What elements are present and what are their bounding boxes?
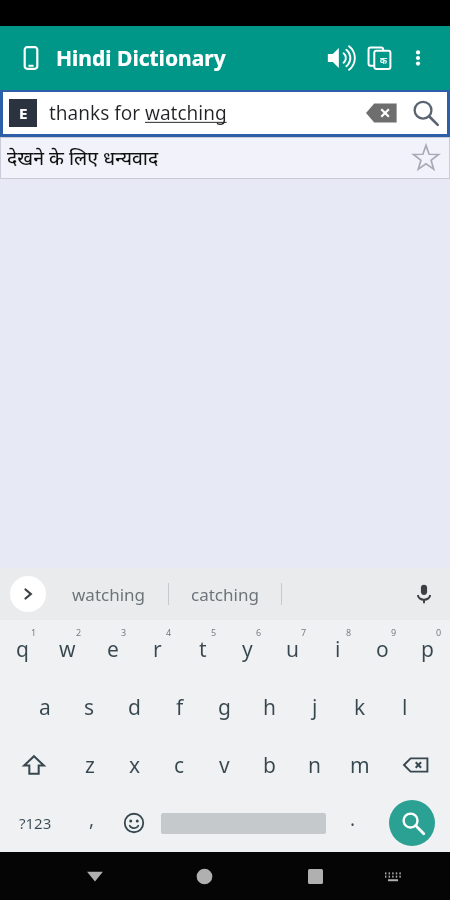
button[interactable]: Back: [65, 852, 124, 900]
button[interactable]: x: [112, 736, 157, 794]
button[interactable]: More options: [400, 40, 436, 76]
staticText: 0: [436, 626, 442, 638]
staticText: thanks for watching: [49, 100, 227, 126]
button[interactable]: a: [22, 678, 67, 736]
button[interactable]: Clear: [359, 92, 403, 134]
button[interactable]: p: [405, 620, 450, 678]
button[interactable]: Shift: [0, 736, 67, 794]
staticText: 2: [76, 626, 82, 638]
button[interactable]: watching: [68, 583, 150, 606]
button[interactable]: Recent apps: [285, 852, 345, 900]
staticText: 8: [346, 626, 352, 638]
staticText: b: [263, 751, 276, 780]
button[interactable]: o: [360, 620, 405, 678]
button[interactable]: e: [90, 620, 135, 678]
staticText: 4: [166, 626, 172, 638]
staticText: v: [219, 751, 230, 780]
button[interactable]: .: [332, 794, 374, 852]
button[interactable]: n: [292, 736, 337, 794]
button[interactable]: Voice input: [404, 574, 444, 614]
staticText: t: [199, 635, 207, 664]
staticText: क: [380, 54, 387, 66]
button[interactable]: t: [180, 620, 225, 678]
staticText: n: [308, 751, 321, 780]
staticText: l: [402, 693, 408, 722]
staticText: a: [39, 693, 51, 722]
button[interactable]: d: [112, 678, 157, 736]
button[interactable]: y: [225, 620, 270, 678]
staticText: u: [286, 635, 299, 664]
button[interactable]: ?123: [0, 794, 71, 852]
button[interactable]: Space: [155, 794, 332, 852]
staticText: 3: [121, 626, 127, 638]
button[interactable]: Speak: [320, 38, 360, 78]
button[interactable]: Home: [174, 852, 234, 900]
staticText: ?123: [19, 813, 52, 833]
button[interactable]: q: [0, 620, 45, 678]
staticText: i: [335, 635, 341, 664]
button[interactable]: E: [3, 92, 447, 134]
staticText: w: [59, 635, 76, 664]
button[interactable]: Emoji: [113, 794, 155, 852]
button[interactable]: More suggestions: [10, 576, 46, 612]
staticText: s: [84, 693, 95, 722]
button[interactable]: Favorite: [406, 138, 446, 178]
button[interactable]: ,: [71, 794, 113, 852]
staticText: z: [85, 751, 95, 780]
staticText: y: [242, 635, 253, 664]
button[interactable]: Backspace: [382, 736, 450, 794]
button[interactable]: Switch keyboard: [363, 852, 423, 900]
button[interactable]: w: [45, 620, 90, 678]
button[interactable]: h: [247, 678, 292, 736]
staticText: h: [263, 693, 276, 722]
staticText: p: [421, 635, 434, 664]
button[interactable]: z: [67, 736, 112, 794]
staticText: देखने के लिए धन्यवाद: [7, 145, 159, 171]
button[interactable]: f: [157, 678, 202, 736]
staticText: .: [350, 806, 356, 832]
staticText: q: [16, 635, 29, 664]
staticText: c: [174, 751, 185, 780]
button[interactable]: i: [315, 620, 360, 678]
staticText: j: [312, 693, 318, 722]
staticText: 9: [391, 626, 397, 638]
staticText: watching: [72, 583, 146, 606]
staticText: m: [350, 751, 370, 780]
staticText: x: [129, 751, 141, 780]
button[interactable]: r: [135, 620, 180, 678]
button[interactable]: g: [202, 678, 247, 736]
staticText: k: [354, 693, 366, 722]
button[interactable]: Search: [374, 794, 450, 852]
staticText: d: [128, 693, 141, 722]
button[interactable]: catching: [187, 583, 263, 606]
staticText: 1: [31, 626, 37, 638]
staticText: 7: [301, 626, 307, 638]
button[interactable]: देखने के लिए धन्यवाद: [0, 137, 450, 179]
button[interactable]: k: [337, 678, 382, 736]
button[interactable]: c: [157, 736, 202, 794]
staticText: catching: [191, 583, 259, 606]
staticText: ,: [89, 806, 95, 832]
button[interactable]: u: [270, 620, 315, 678]
button[interactable]: Search: [403, 92, 447, 134]
button[interactable]: v: [202, 736, 247, 794]
button[interactable]: App icon: [14, 41, 48, 75]
staticText: e: [107, 635, 119, 664]
staticText: 5: [211, 626, 217, 638]
staticText: Hindi Dictionary: [56, 44, 226, 73]
staticText: r: [153, 635, 162, 664]
button[interactable]: j: [292, 678, 337, 736]
button[interactable]: s: [67, 678, 112, 736]
button[interactable]: Copy: [360, 38, 400, 78]
staticText: o: [376, 635, 389, 664]
button[interactable]: l: [382, 678, 427, 736]
staticText: E: [19, 103, 28, 123]
button[interactable]: m: [337, 736, 382, 794]
staticText: g: [218, 693, 231, 722]
button[interactable]: b: [247, 736, 292, 794]
staticText: f: [176, 693, 184, 722]
staticText: 6: [256, 626, 262, 638]
